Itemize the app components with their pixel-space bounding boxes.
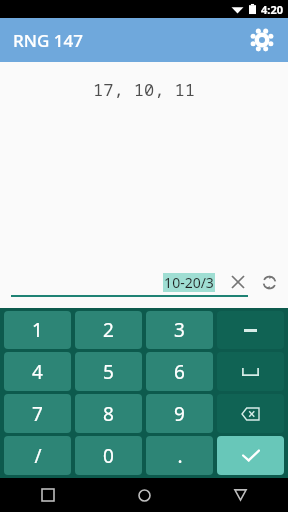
button[interactable]: 7 bbox=[4, 394, 71, 433]
button[interactable]: Backspace bbox=[217, 394, 284, 433]
button[interactable]: 0 bbox=[75, 436, 142, 475]
staticText: 0 bbox=[103, 443, 114, 469]
button[interactable]: Clear bbox=[224, 269, 251, 295]
staticText: 17, 10, 11 bbox=[93, 78, 195, 101]
button[interactable]: 6 bbox=[146, 352, 213, 391]
staticText: 6 bbox=[174, 359, 185, 385]
staticText: 4:20 bbox=[261, 2, 283, 17]
button[interactable]: 4 bbox=[4, 352, 71, 391]
staticText: 5 bbox=[103, 359, 114, 385]
staticText: 10-20/3 bbox=[164, 273, 214, 292]
staticText: 9 bbox=[174, 401, 185, 427]
staticText: 4 bbox=[32, 359, 43, 385]
button[interactable]: 8 bbox=[75, 394, 142, 433]
staticText: 2 bbox=[103, 317, 114, 343]
button[interactable]: Settings bbox=[243, 21, 281, 59]
staticText: 7 bbox=[32, 401, 43, 427]
button[interactable]: Regenerate bbox=[256, 269, 283, 295]
button[interactable]: Minus bbox=[217, 311, 284, 349]
button[interactable]: 1 bbox=[4, 311, 71, 349]
button[interactable]: Back bbox=[192, 478, 288, 512]
button[interactable]: 2 bbox=[75, 311, 142, 349]
button[interactable]: Space bbox=[217, 352, 284, 391]
staticText: 1 bbox=[32, 317, 43, 343]
button[interactable]: 9 bbox=[146, 394, 213, 433]
staticText: 3 bbox=[174, 317, 185, 343]
button[interactable]: Recent apps bbox=[0, 478, 96, 512]
button[interactable]: Submit bbox=[217, 436, 284, 475]
staticText: . bbox=[177, 443, 183, 469]
button[interactable]: . bbox=[146, 436, 213, 475]
button[interactable]: Home bbox=[96, 478, 192, 512]
staticText: / bbox=[34, 443, 42, 469]
button[interactable]: 5 bbox=[75, 352, 142, 391]
button[interactable]: / bbox=[4, 436, 71, 475]
staticText: RNG 147 bbox=[13, 29, 83, 52]
staticText: 8 bbox=[103, 401, 114, 427]
button[interactable]: 3 bbox=[146, 311, 213, 349]
